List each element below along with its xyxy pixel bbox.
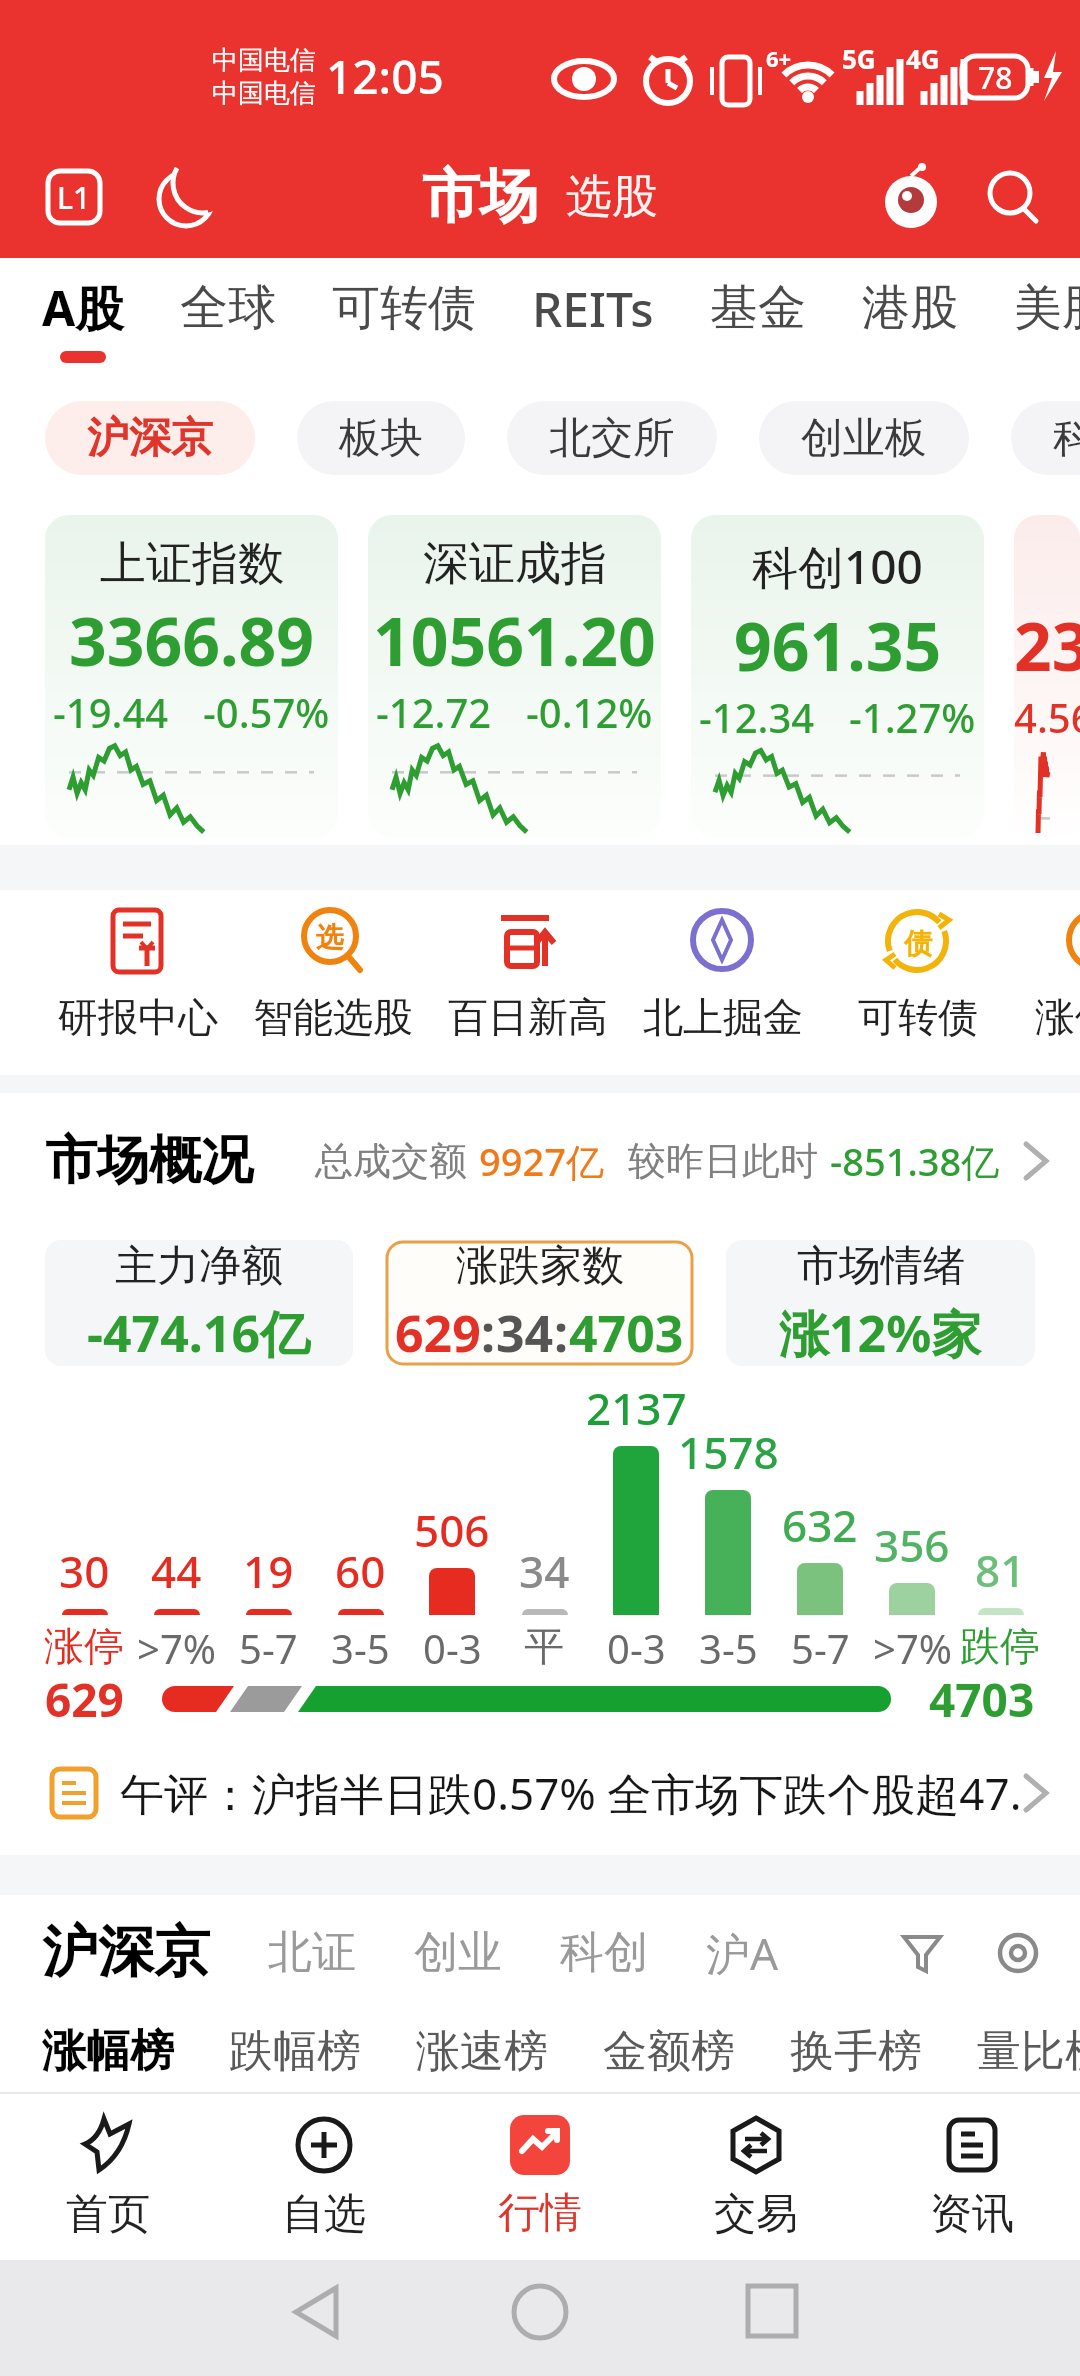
button[interactable]: REITs (532, 276, 654, 363)
staticText: 涨12%家 (779, 1299, 982, 1366)
staticText: 市场 (422, 160, 538, 233)
button[interactable] (878, 164, 944, 230)
staticText: 行情 (498, 2187, 582, 2240)
staticText: 百日新高 (448, 992, 608, 1042)
staticText: -12.34 (699, 690, 815, 744)
button[interactable]: 北交所 (507, 401, 717, 475)
button[interactable]: 行情 (432, 2094, 648, 2260)
button[interactable]: 换手榜 (790, 2024, 922, 2079)
button[interactable] (996, 1931, 1040, 1975)
staticText: 科创板 (1053, 412, 1080, 465)
staticText: 可转债 (332, 278, 476, 338)
staticText: 中国电信 (212, 77, 316, 110)
staticText: 自选 (282, 2188, 366, 2241)
button[interactable]: 科创 (560, 1925, 648, 1980)
staticText: 港股 (862, 278, 958, 338)
staticText: 5G (842, 41, 876, 76)
staticText: 板块 (339, 412, 423, 465)
button[interactable]: 资讯 (864, 2094, 1080, 2260)
staticText: 较昨日此时 (628, 1137, 818, 1185)
button[interactable]: 主力净额 (45, 1240, 353, 1366)
staticText: 12:05 (326, 45, 444, 108)
staticText: -19.44 (53, 685, 169, 739)
button[interactable]: 科创板 (1011, 401, 1080, 475)
staticText: -474.16亿 (87, 1299, 311, 1366)
staticText: 美股 (1014, 278, 1080, 338)
staticText: >7% (137, 1621, 216, 1668)
button[interactable]: 自选 (216, 2094, 432, 2260)
button[interactable] (156, 165, 220, 229)
staticText: 涨停 (44, 1621, 124, 1668)
staticText: 1578 (678, 1422, 779, 1482)
button[interactable]: 可转债 (332, 278, 476, 360)
staticText: 3-5 (331, 1621, 390, 1668)
staticText: 3-5 (699, 1621, 758, 1668)
button[interactable]: 首页 (0, 2094, 216, 2260)
button[interactable]: 基金 (710, 278, 806, 360)
button[interactable]: 科创100 (691, 515, 984, 837)
button[interactable]: 沪A (706, 1923, 779, 1983)
button[interactable]: 美股 (1014, 278, 1080, 360)
staticText: 交易 (714, 2188, 798, 2241)
button[interactable]: 跌幅榜 (229, 2024, 361, 2079)
button[interactable]: 2345.67 (1014, 515, 1080, 837)
button[interactable]: 市场情绪 (726, 1240, 1035, 1366)
staticText: -0.57% (203, 685, 330, 739)
button[interactable]: 债 (820, 902, 1015, 1042)
staticText: -12.72 (376, 685, 492, 739)
staticText: 上证指数 (100, 535, 284, 593)
staticText: 科创100 (752, 535, 923, 598)
button[interactable]: 板块 (297, 401, 465, 475)
button[interactable]: 北证 (268, 1925, 356, 1980)
button[interactable]: 金额榜 (603, 2024, 735, 2079)
button[interactable]: 创业板 (759, 401, 969, 475)
staticText: 首页 (66, 2188, 150, 2241)
staticText: 81 (975, 1540, 1026, 1600)
staticText: 北上掘金 (643, 992, 803, 1042)
staticText: REITs (532, 276, 654, 341)
staticText: 4G (906, 41, 940, 76)
staticText: 沪深京 (42, 1917, 210, 1988)
button[interactable]: 交易 (648, 2094, 864, 2260)
button[interactable]: 涨停雷达 (1015, 902, 1080, 1042)
button[interactable]: 全球 (180, 278, 276, 360)
staticText: 基金 (710, 278, 806, 338)
staticText: 涨跌家数 (456, 1240, 624, 1293)
staticText: 总成交额 (315, 1137, 467, 1185)
button[interactable]: 上证指数 (45, 515, 338, 837)
button[interactable]: A股 (42, 275, 124, 363)
staticText: : (554, 1299, 569, 1366)
staticText: 34 (496, 1299, 554, 1366)
staticText: 44 (151, 1541, 202, 1601)
button[interactable]: 沪深京 (45, 401, 255, 475)
button[interactable]: 创业 (414, 1925, 502, 1980)
staticText: 深证成指 (423, 535, 607, 593)
button[interactable]: 量比榜 (977, 2024, 1080, 2079)
button[interactable]: L1 (48, 171, 100, 223)
staticText: 资讯 (930, 2188, 1014, 2241)
staticText: 19 (243, 1541, 294, 1601)
button[interactable]: 研报中心 (40, 902, 235, 1042)
staticText: 涨停雷达 (1035, 992, 1080, 1042)
button[interactable]: 港股 (862, 278, 958, 360)
button[interactable]: 北上掘金 (625, 902, 820, 1042)
button[interactable]: 涨幅榜 (42, 2024, 174, 2079)
staticText: 4.56 (1014, 690, 1080, 744)
staticText: 市场情绪 (797, 1240, 965, 1293)
button[interactable]: 午评：沪指半日跌0.57% 全市场下跌个股超47... (50, 1730, 1050, 1855)
button[interactable]: 百日新高 (430, 902, 625, 1042)
staticText: L1 (57, 177, 91, 218)
button[interactable] (900, 1931, 944, 1975)
button[interactable]: 涨速榜 (416, 2024, 548, 2079)
staticText: 智能选股 (253, 992, 413, 1042)
staticText: 0-3 (423, 1621, 482, 1668)
staticText: 506 (414, 1500, 490, 1560)
staticText: 632 (782, 1495, 858, 1555)
button[interactable]: 选 (235, 902, 430, 1042)
button[interactable]: 涨跌家数 (385, 1240, 694, 1366)
staticText: 629 (45, 1668, 124, 1730)
staticText: A股 (42, 275, 124, 341)
button[interactable] (984, 169, 1040, 225)
button[interactable]: 深证成指 (368, 515, 661, 837)
staticText: 3366.89 (69, 595, 315, 685)
